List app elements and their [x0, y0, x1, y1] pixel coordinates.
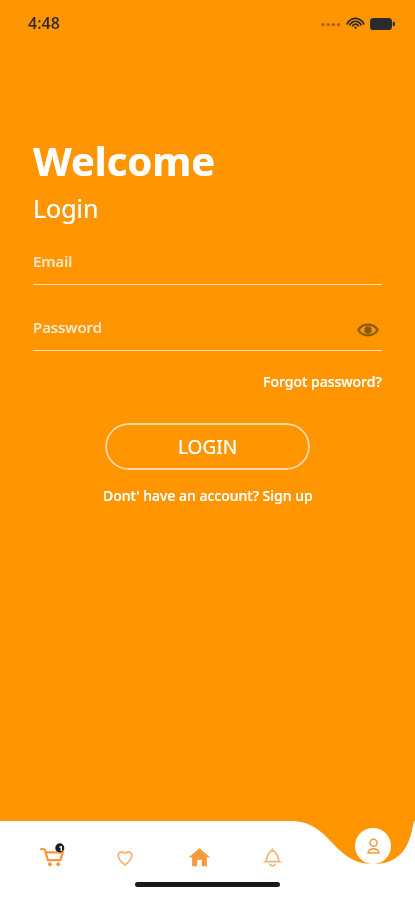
button[interactable]: Home [178, 836, 220, 878]
staticText: Password [33, 317, 102, 337]
button[interactable]: Favorites [104, 836, 146, 878]
staticText: 1 [59, 844, 64, 854]
staticText: Login [33, 191, 99, 225]
staticText: Forgot password? [263, 372, 382, 391]
staticText: Email [33, 251, 73, 271]
button[interactable]: Notifications [251, 836, 293, 878]
button[interactable]: Profile [355, 828, 391, 864]
button[interactable]: Show password [354, 317, 382, 343]
button[interactable]: Cart [31, 836, 73, 878]
staticText: Dont' have an account? Sign up [103, 486, 313, 505]
staticText: 4:48 [28, 12, 60, 34]
button[interactable]: Dont' have an account? Sign up [103, 486, 313, 505]
button[interactable]: Forgot password? [263, 372, 382, 391]
button[interactable]: LOGIN [105, 423, 310, 470]
staticText: LOGIN [178, 434, 238, 460]
staticText: Welcome [33, 133, 216, 187]
